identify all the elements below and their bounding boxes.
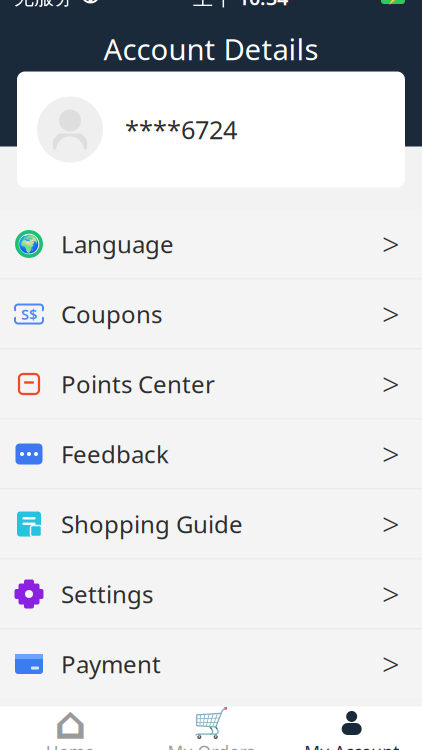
staticText: Coupons [61,298,162,330]
staticText: > [382,364,400,404]
staticText: 无服务 [14,0,74,10]
button[interactable]: Feedback [0,419,422,489]
staticText: S$ [21,304,37,324]
staticText: 🛒 [192,706,229,740]
button[interactable]: Settings [0,559,422,629]
button[interactable]: 🛒 [141,706,281,750]
staticText: Settings [61,578,153,610]
staticText: > [382,434,400,474]
staticText: Payment [61,648,161,680]
staticText: > [382,294,400,334]
staticText: > [382,574,400,614]
staticText: Shopping Guide [61,508,243,540]
button[interactable]: S$ [0,279,422,349]
button[interactable]: ⌂ [0,706,141,750]
button[interactable]: Points Center [0,349,422,419]
button[interactable]: Payment [0,629,422,698]
staticText: 🌍 [18,234,40,254]
button[interactable]: Shopping Guide [0,489,422,559]
staticText: > [382,644,400,684]
staticText: My Account [304,740,399,750]
staticText: My Orders [167,740,254,750]
staticText: Account Details [103,29,318,68]
staticText: 上午 10:34 [193,0,288,11]
staticText: Language [61,228,174,260]
staticText: Points Center [61,368,215,400]
button[interactable]: 🌍 [0,209,422,279]
button[interactable]: My Account [281,706,422,750]
staticText: Home [46,740,95,750]
staticText: ****6724 [125,113,237,146]
staticText: > [382,224,400,264]
staticText: Feedback [61,438,169,470]
staticText: ⌂ [54,697,86,749]
staticText: > [382,504,400,544]
staticText: ⚡ [385,0,400,4]
